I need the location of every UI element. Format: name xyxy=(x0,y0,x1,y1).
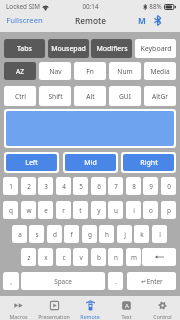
button[interactable]: , xyxy=(3,272,19,290)
button[interactable]: b xyxy=(91,248,106,266)
staticText: q xyxy=(9,206,13,215)
button[interactable]: j xyxy=(117,225,132,243)
staticText: Ctrl xyxy=(15,92,26,101)
button[interactable]: 2 xyxy=(21,177,36,195)
staticText: 88% xyxy=(149,2,162,11)
button[interactable]: z xyxy=(21,248,36,266)
button[interactable]: n xyxy=(108,248,123,266)
button[interactable]: Mousepad xyxy=(48,39,89,58)
staticText: u xyxy=(114,206,118,215)
staticText: Num xyxy=(117,67,133,76)
button[interactable]: u xyxy=(108,201,123,219)
button[interactable]: Remote xyxy=(72,296,108,320)
staticText: n xyxy=(114,253,118,262)
button[interactable]: Macros xyxy=(0,296,36,320)
button[interactable]: k xyxy=(134,225,149,243)
button[interactable]: M xyxy=(137,14,147,26)
button[interactable]: a xyxy=(12,225,27,243)
staticText: k xyxy=(140,230,144,239)
staticText: 1 xyxy=(9,182,13,191)
button[interactable]: d xyxy=(47,225,62,243)
button[interactable]: Backspace xyxy=(142,248,176,266)
button[interactable]: Tabs xyxy=(4,39,45,58)
button[interactable]: v xyxy=(73,248,88,266)
button[interactable]: e xyxy=(38,201,53,219)
button[interactable]: AltGr xyxy=(144,86,176,106)
staticText: Fn xyxy=(86,67,94,76)
button[interactable]: q xyxy=(3,201,18,219)
staticText: l xyxy=(159,230,161,239)
button[interactable]: A xyxy=(108,296,144,320)
button[interactable]: Fn xyxy=(74,62,106,80)
button[interactable]: p xyxy=(161,201,176,219)
staticText: j xyxy=(124,230,126,239)
staticText: Fullscreen xyxy=(6,15,43,25)
button[interactable]: Shift xyxy=(39,86,71,106)
staticText: Left xyxy=(25,158,38,168)
button[interactable]: t xyxy=(73,201,88,219)
button[interactable]: 7 xyxy=(108,177,123,195)
button[interactable]: w xyxy=(21,201,36,219)
button[interactable]: Bluetooth xyxy=(154,15,161,26)
button[interactable]: x xyxy=(38,248,53,266)
staticText: Control xyxy=(153,313,172,320)
button[interactable]: Num xyxy=(109,62,141,80)
button[interactable]: o xyxy=(143,201,158,219)
button[interactable]: Mid xyxy=(65,154,116,171)
button[interactable]: Space xyxy=(21,272,105,290)
button[interactable]: s xyxy=(29,225,44,243)
button[interactable]: i xyxy=(126,201,141,219)
button[interactable]: 3 xyxy=(38,177,53,195)
staticText: 6 xyxy=(97,182,101,191)
staticText: e xyxy=(44,206,48,215)
staticText: d xyxy=(53,230,57,239)
button[interactable]: 1 xyxy=(3,177,18,195)
button[interactable]: Presentation xyxy=(36,296,72,320)
staticText: m xyxy=(131,253,137,262)
button[interactable]: Alt xyxy=(74,86,106,106)
button[interactable]: 0 xyxy=(161,177,176,195)
button[interactable]: GUI xyxy=(109,86,141,106)
button[interactable]: 8 xyxy=(126,177,141,195)
button[interactable]: . xyxy=(108,272,123,290)
staticText: Alt xyxy=(86,92,95,101)
button[interactable]: Fullscreen xyxy=(6,15,43,25)
button[interactable]: Left xyxy=(6,154,57,171)
button[interactable]: 4 xyxy=(56,177,71,195)
button[interactable]: r xyxy=(56,201,71,219)
button[interactable]: m xyxy=(126,248,141,266)
button[interactable]: Ctrl xyxy=(4,86,36,106)
button[interactable]: Right xyxy=(123,154,174,171)
button[interactable]: y xyxy=(91,201,106,219)
staticText: i xyxy=(133,206,135,215)
button[interactable]: l xyxy=(152,225,167,243)
button[interactable]: 9 xyxy=(143,177,158,195)
button[interactable]: Modifiers xyxy=(91,39,132,58)
button[interactable]: Media xyxy=(144,62,176,80)
button[interactable]: Control xyxy=(144,296,180,320)
staticText: Shift xyxy=(48,92,63,101)
button[interactable]: Keyboard xyxy=(135,39,176,58)
button[interactable]: g xyxy=(82,225,97,243)
staticText: v xyxy=(79,253,83,262)
staticText: Text xyxy=(121,313,132,320)
button[interactable]: ↵Enter xyxy=(127,272,176,290)
button[interactable]: AZ xyxy=(4,62,36,80)
staticText: AZ xyxy=(16,67,24,76)
staticText: r xyxy=(62,206,65,215)
button[interactable]: h xyxy=(99,225,114,243)
button[interactable]: 5 xyxy=(73,177,88,195)
button[interactable]: 6 xyxy=(91,177,106,195)
staticText: h xyxy=(105,230,109,239)
staticText: Modifiers xyxy=(96,44,128,54)
staticText: Space xyxy=(54,277,72,286)
button[interactable]: f xyxy=(64,225,79,243)
button[interactable]: Nav xyxy=(39,62,71,80)
staticText: 00:14 xyxy=(82,2,99,11)
staticText: o xyxy=(149,206,153,215)
staticText: 2 xyxy=(27,182,31,191)
staticText: Keyboard xyxy=(140,44,172,54)
button[interactable]: c xyxy=(56,248,71,266)
staticText: f xyxy=(70,230,73,239)
